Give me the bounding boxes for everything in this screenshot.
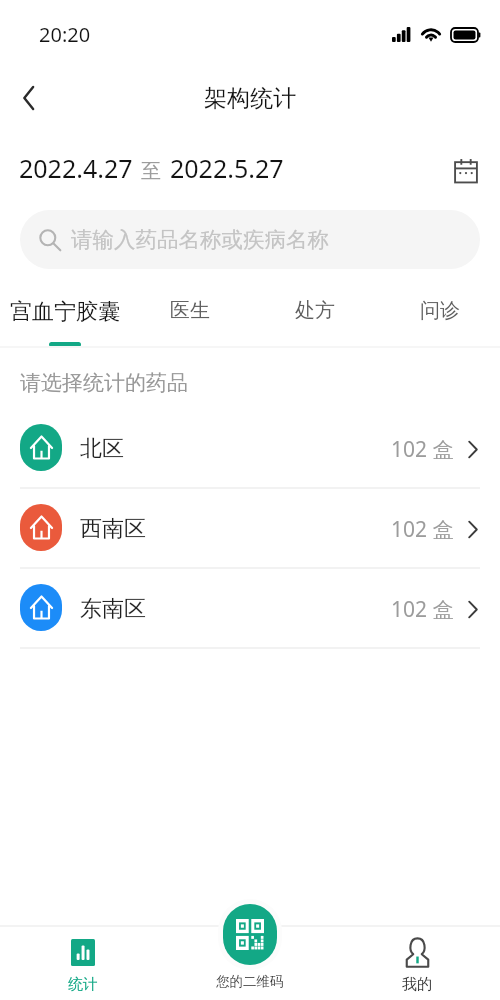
button[interactable]: 医生 bbox=[127, 292, 252, 347]
staticText: 2022.5.27 bbox=[170, 151, 284, 185]
button[interactable]: 北区 bbox=[0, 409, 500, 489]
button[interactable]: 我的 bbox=[359, 927, 475, 1000]
staticText: 东南区 bbox=[80, 595, 146, 623]
button[interactable]: 西南区 bbox=[0, 489, 500, 569]
staticText: 102 盒 bbox=[391, 515, 454, 544]
button[interactable]: 东南区 bbox=[0, 569, 500, 649]
button[interactable]: 处方 bbox=[252, 292, 377, 347]
staticText: 请选择统计的药品 bbox=[20, 370, 188, 396]
staticText: 102 盒 bbox=[391, 435, 454, 464]
button[interactable]: Your QR code bbox=[185, 899, 315, 1000]
staticText: 您的二维码 bbox=[216, 973, 284, 990]
button[interactable]: 宫血宁胶囊 bbox=[2, 292, 127, 347]
staticText: 架构统计 bbox=[204, 84, 296, 113]
staticText: 处方 bbox=[295, 298, 335, 323]
staticText: 请输入药品名称或疾病名称 bbox=[71, 226, 329, 253]
button[interactable]: Pick date range bbox=[446, 151, 486, 191]
staticText: 北区 bbox=[80, 435, 124, 463]
staticText: 问诊 bbox=[420, 298, 460, 323]
staticText: 102 盒 bbox=[391, 595, 454, 624]
button[interactable]: 问诊 bbox=[377, 292, 500, 347]
button[interactable]: Back bbox=[4, 74, 52, 122]
staticText: 西南区 bbox=[80, 515, 146, 543]
staticText: 医生 bbox=[170, 298, 210, 323]
button[interactable]: 统计 bbox=[25, 927, 141, 1000]
staticText: 2022.4.27 bbox=[19, 151, 133, 185]
staticText: 宫血宁胶囊 bbox=[10, 298, 120, 326]
staticText: 统计 bbox=[68, 975, 98, 994]
staticText: 至 bbox=[141, 159, 161, 184]
staticText: 20:20 bbox=[39, 21, 91, 48]
staticText: 我的 bbox=[402, 975, 432, 994]
button[interactable]: 请输入药品名称或疾病名称 bbox=[20, 210, 480, 269]
